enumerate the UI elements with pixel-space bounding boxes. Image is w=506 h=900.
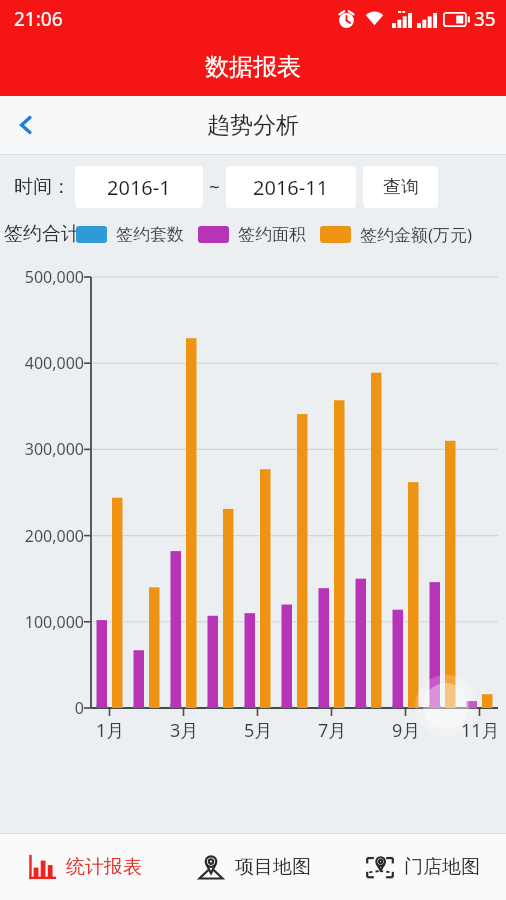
staticText: 400,000	[24, 352, 84, 374]
staticText: 门店地图	[404, 855, 480, 879]
staticText: 签约合计	[4, 222, 80, 246]
staticText: 查询	[383, 176, 419, 199]
staticText: 签约金额(万元)	[360, 223, 473, 246]
staticText: 5月	[244, 718, 273, 743]
staticText: 0	[74, 697, 84, 719]
staticText: 1月	[96, 718, 125, 743]
staticText: 35	[474, 6, 496, 32]
staticText: 3月	[170, 718, 199, 743]
staticText: 趋势分析	[207, 111, 299, 140]
button[interactable]: 门店地图	[337, 834, 506, 900]
button[interactable]: Back	[0, 99, 52, 151]
staticText: 300,000	[24, 438, 84, 460]
button[interactable]: 2016-11	[226, 166, 356, 208]
staticText: 数据报表	[205, 52, 301, 82]
button[interactable]: 统计报表	[0, 834, 168, 900]
staticText: 200,000	[24, 525, 84, 547]
staticText: 统计报表	[66, 855, 142, 879]
button[interactable]: 项目地图	[168, 834, 337, 900]
staticText: 2016-1	[107, 174, 171, 201]
staticText: 11月	[461, 718, 500, 743]
staticText: 7月	[318, 718, 347, 743]
staticText: 9月	[392, 718, 421, 743]
staticText: 500,000	[24, 266, 84, 288]
staticText: 时间：	[14, 175, 71, 199]
staticText: 签约套数	[116, 224, 184, 245]
button[interactable]: 2016-1	[75, 166, 203, 208]
staticText: 100,000	[24, 611, 84, 633]
staticText: 21:06	[14, 6, 63, 32]
staticText: ~	[209, 174, 220, 200]
button[interactable]: 查询	[363, 166, 438, 208]
staticText: 项目地图	[235, 855, 311, 879]
staticText: 签约面积	[238, 224, 306, 245]
staticText: 2016-11	[253, 174, 329, 201]
